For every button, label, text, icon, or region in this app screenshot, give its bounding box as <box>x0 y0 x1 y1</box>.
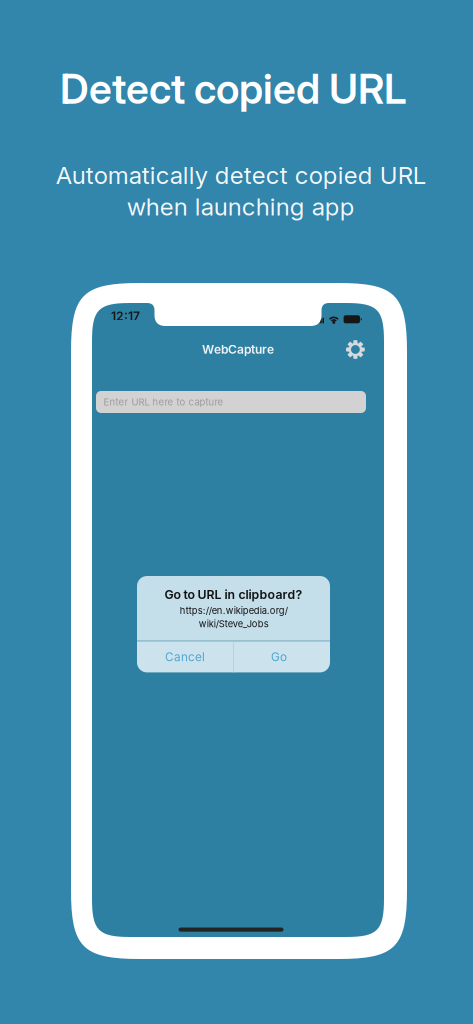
staticText: WebCapture <box>202 342 274 357</box>
button[interactable]: Cancel <box>137 641 233 672</box>
staticText: Automatically detect copied URL when lau… <box>55 160 425 221</box>
staticText: https://en.wikipedia.org/ wiki/Steve_Job… <box>179 605 287 629</box>
button[interactable]: Enter URL here to capture <box>96 391 366 413</box>
button[interactable]: Settings <box>340 334 370 364</box>
staticText: Go <box>271 650 287 664</box>
button[interactable]: Go <box>234 641 330 672</box>
staticText: 12:17 <box>111 309 140 323</box>
staticText: Enter URL here to capture <box>103 396 223 408</box>
staticText: Go to URL in clipboard? <box>164 587 302 602</box>
staticText: Detect copied URL <box>60 64 407 113</box>
staticText: Cancel <box>165 650 205 664</box>
